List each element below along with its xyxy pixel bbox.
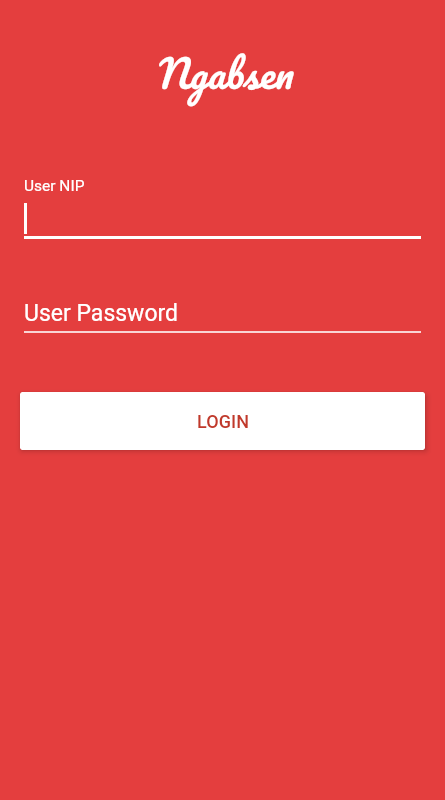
staticText: LOGIN — [197, 411, 249, 432]
staticText: User Password — [24, 300, 179, 327]
staticText: User NIP — [24, 177, 85, 195]
button[interactable]: User Password — [24, 300, 421, 333]
button[interactable]: User NIP input field — [24, 177, 421, 239]
button[interactable]: LOGIN — [20, 392, 425, 450]
